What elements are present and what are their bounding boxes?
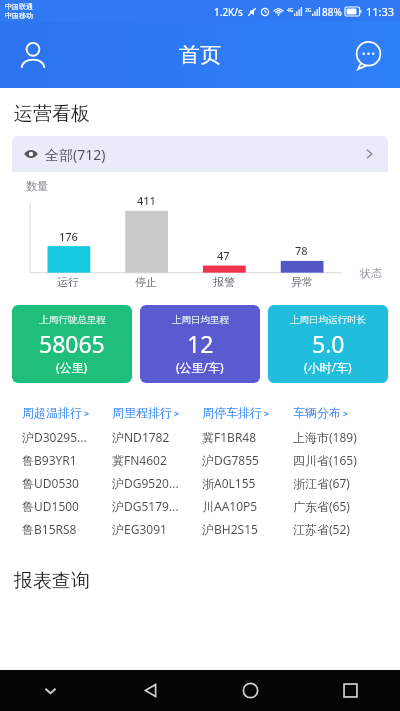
staticText: 12 (187, 328, 214, 359)
staticText: 四川省(165) (293, 452, 384, 468)
staticText: 鲁B93YR1 (22, 452, 112, 468)
button[interactable]: 周停车排行 (202, 405, 293, 420)
staticText: 运行 (57, 275, 79, 289)
staticText: 沪DG5179... (112, 498, 202, 514)
staticText: 沪BH2S15 (202, 521, 293, 537)
staticText: 沪DG9520... (112, 475, 202, 491)
staticText: 冀FN4602 (112, 452, 202, 468)
staticText: 状态 (360, 266, 382, 280)
staticText: (公里) (56, 359, 88, 375)
staticText: 周停车排行 (202, 405, 262, 420)
button[interactable]: Messages (346, 33, 390, 77)
staticText: 58065 (39, 328, 105, 359)
staticText: 浙江省(67) (293, 475, 384, 491)
button[interactable]: Recents (300, 670, 400, 711)
staticText: 停止 (135, 275, 157, 289)
staticText: 4G (287, 7, 294, 14)
staticText: (小时/车) (304, 359, 352, 375)
staticText: > (343, 407, 349, 419)
button[interactable]: 全部(712) (12, 136, 388, 172)
staticText: 运营看板 (14, 102, 90, 126)
staticText: 上周日均运行时长 (290, 314, 366, 326)
staticText: 鲁UD0530 (22, 475, 112, 491)
button[interactable]: 上周日均运行时长 (268, 305, 388, 383)
staticText: 沪EG3091 (112, 521, 202, 537)
button[interactable]: Hide (0, 670, 100, 711)
staticText: 沪ND1782 (112, 429, 202, 445)
staticText: 78 (295, 243, 308, 258)
staticText: 冀F1BR48 (202, 429, 293, 445)
staticText: 11:33 (366, 4, 395, 19)
button[interactable]: 周超温排行 (22, 405, 112, 420)
staticText: 1.2K/s (214, 5, 243, 19)
staticText: 沪DG7855 (202, 452, 293, 468)
staticText: (公里/车) (176, 359, 224, 375)
staticText: 2G (305, 7, 312, 14)
staticText: 全部(712) (45, 145, 106, 164)
staticText: > (84, 407, 90, 419)
button[interactable]: 上周行驶总里程 (12, 305, 132, 383)
staticText: 周里程排行 (112, 405, 172, 420)
staticText: > (264, 407, 270, 419)
staticText: 广东省(65) (293, 498, 384, 514)
staticText: 沪D30295... (22, 429, 112, 445)
staticText: 报警 (213, 275, 235, 289)
button[interactable]: 周里程排行 (112, 405, 202, 420)
button[interactable]: Home (200, 670, 300, 711)
staticText: 411 (137, 193, 156, 208)
staticText: 川AA10P5 (202, 498, 293, 514)
staticText: 车辆分布 (293, 405, 341, 420)
staticText: 47 (217, 248, 230, 263)
staticText: 5.0 (312, 328, 345, 359)
staticText: 上周行驶总里程 (39, 314, 106, 326)
staticText: 数量 (26, 179, 48, 193)
staticText: 江苏省(52) (293, 521, 384, 537)
staticText: 176 (59, 229, 78, 244)
staticText: 88% (322, 5, 342, 19)
staticText: 浙A0L155 (202, 475, 293, 491)
staticText: 周超温排行 (22, 405, 82, 420)
button[interactable]: Back (100, 670, 200, 711)
staticText: 中国联通 (5, 2, 33, 11)
staticText: 首页 (179, 42, 221, 68)
staticText: 上周日均里程 (172, 314, 229, 326)
staticText: 异常 (291, 275, 313, 289)
button[interactable]: 上周日均里程 (140, 305, 260, 383)
button[interactable]: 车辆分布 (293, 405, 384, 420)
staticText: 中国移动 (5, 11, 33, 20)
button[interactable]: Profile (10, 32, 56, 78)
staticText: > (174, 407, 180, 419)
staticText: 鲁B15RS8 (22, 521, 112, 537)
staticText: 鲁UD1500 (22, 498, 112, 514)
staticText: 报表查询 (14, 569, 90, 593)
staticText: 上海市(189) (293, 429, 384, 445)
